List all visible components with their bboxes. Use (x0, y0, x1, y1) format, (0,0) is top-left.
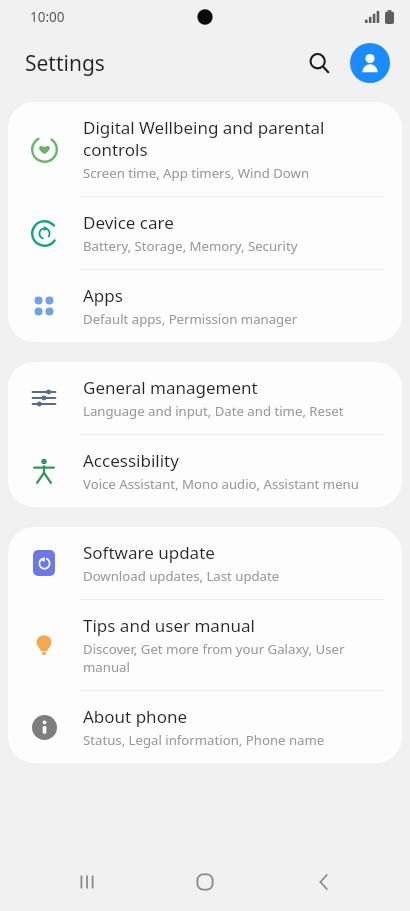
staticText: About phone (83, 705, 188, 728)
button[interactable]: Search (298, 42, 340, 84)
staticText: Language and input, Date and time, Reset (83, 402, 344, 420)
button[interactable]: Digital Wellbeing and parental controls (8, 102, 402, 196)
staticText: Device care (83, 211, 174, 234)
staticText: Apps (83, 284, 123, 307)
staticText: Status, Legal information, Phone name (83, 731, 325, 749)
button[interactable]: Tips and user manual (8, 600, 402, 690)
button[interactable]: Accessibility (8, 435, 402, 507)
staticText: Tips and user manual (83, 614, 255, 637)
staticText: 10:00 (30, 8, 65, 26)
staticText: General management (83, 376, 258, 399)
button[interactable]: Home (173, 853, 237, 911)
button[interactable]: Apps (8, 270, 402, 342)
staticText: Discover, Get more from your Galaxy, Use… (83, 640, 382, 676)
staticText: Digital Wellbeing and parental controls (83, 116, 382, 161)
staticText: Settings (25, 49, 105, 78)
staticText: Voice Assistant, Mono audio, Assistant m… (83, 475, 359, 493)
button[interactable]: About phone (8, 691, 402, 763)
staticText: Download updates, Last update (83, 567, 280, 585)
button[interactable]: Software update (8, 527, 402, 599)
button[interactable]: General management (8, 362, 402, 434)
staticText: Accessibility (83, 449, 179, 472)
staticText: Screen time, App timers, Wind Down (83, 164, 310, 182)
button[interactable]: Account (350, 43, 390, 83)
staticText: Battery, Storage, Memory, Security (83, 237, 298, 255)
button[interactable]: Back (292, 853, 356, 911)
button[interactable]: Device care (8, 197, 402, 269)
staticText: Software update (83, 541, 215, 564)
button[interactable]: Recent apps (55, 853, 119, 911)
staticText: Default apps, Permission manager (83, 310, 298, 328)
